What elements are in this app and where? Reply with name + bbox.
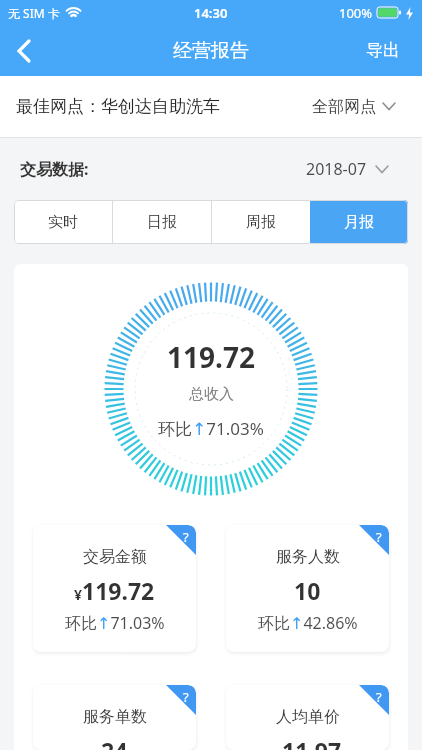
staticText: 无 SIM 卡	[8, 5, 60, 21]
staticText: 交易数据:	[20, 158, 89, 180]
staticText: 全部网点	[312, 97, 376, 117]
staticText: 实时	[48, 213, 78, 232]
staticText: ?	[183, 528, 189, 546]
button[interactable]: 最佳网点：华创达自助洗车	[0, 76, 422, 137]
staticText: ?	[376, 688, 382, 706]
button[interactable]: 周报	[212, 200, 310, 244]
staticText: 最佳网点：华创达自助洗车	[16, 96, 220, 117]
staticText: 交易金额	[83, 547, 147, 567]
button[interactable]: 月报	[310, 200, 408, 244]
staticText: 经营报告	[173, 39, 249, 63]
staticText: 人均单价	[276, 707, 340, 727]
staticText: 导出	[366, 40, 400, 61]
staticText: 100%	[339, 4, 373, 22]
staticText: ¥119.72	[74, 575, 155, 606]
staticText: ?	[376, 528, 382, 546]
button[interactable]: 日报	[113, 200, 211, 244]
staticText: 14:30	[194, 4, 228, 22]
staticText: 服务人数	[276, 547, 340, 567]
staticText: 2018-07	[306, 158, 367, 180]
staticText: 总收入	[189, 385, 234, 404]
staticText: ?	[183, 688, 189, 706]
staticText: 10	[294, 575, 321, 606]
button[interactable]	[6, 33, 42, 69]
staticText: 周报	[246, 213, 276, 232]
button[interactable]: 2018-07	[306, 158, 389, 180]
button[interactable]: ?	[33, 685, 196, 750]
staticText: 119.72	[167, 338, 255, 376]
staticText: 日报	[147, 213, 177, 232]
button[interactable]: 导出	[366, 40, 400, 61]
staticText: 环比↑71.03%	[158, 417, 264, 440]
staticText: 环比↑71.03%	[65, 612, 165, 634]
staticText: ¥11.97	[274, 735, 342, 750]
staticText: 服务单数	[83, 707, 147, 727]
button[interactable]: ?	[226, 685, 389, 750]
button[interactable]: 实时	[14, 200, 112, 244]
staticText: 环比↑42.86%	[258, 612, 358, 634]
button[interactable]: ?	[33, 525, 196, 652]
staticText: 24	[101, 735, 128, 750]
staticText: 月报	[344, 213, 374, 232]
button[interactable]: ?	[226, 525, 389, 652]
